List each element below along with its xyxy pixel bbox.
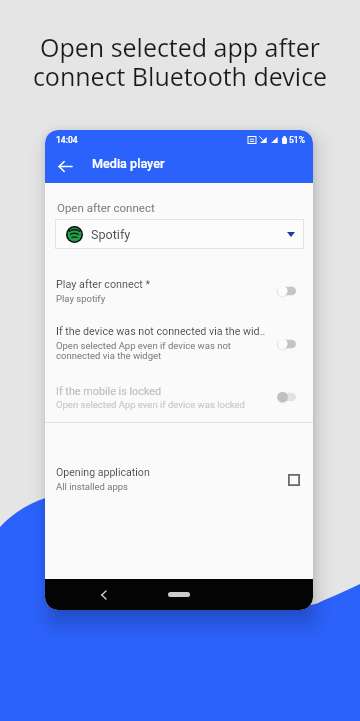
staticText: All installed apps: [56, 481, 129, 492]
button[interactable]: Back: [95, 586, 113, 604]
staticText: 14:04: [56, 135, 78, 145]
staticText: Open selected App even if device was not…: [56, 340, 231, 362]
staticText: Media player: [92, 156, 165, 171]
staticText: 51%: [289, 135, 305, 145]
staticText: Open selected App even if device was loc…: [56, 399, 245, 410]
staticText: If the mobile is locked: [56, 385, 162, 398]
staticText: Play spotify: [56, 293, 106, 304]
button[interactable]: Back: [53, 154, 77, 178]
button[interactable]: [45, 456, 313, 492]
staticText: Open selected app after connect Bluetoot…: [0, 30, 360, 93]
button[interactable]: Spotify: [55, 219, 304, 249]
staticText: Opening application: [56, 466, 150, 478]
staticText: Play after connect *: [56, 278, 151, 291]
staticText: Open after connect: [57, 201, 155, 214]
staticText: If the device was not connected via the …: [56, 325, 266, 338]
staticText: Spotify: [91, 227, 131, 242]
button[interactable]: Home: [168, 592, 190, 597]
